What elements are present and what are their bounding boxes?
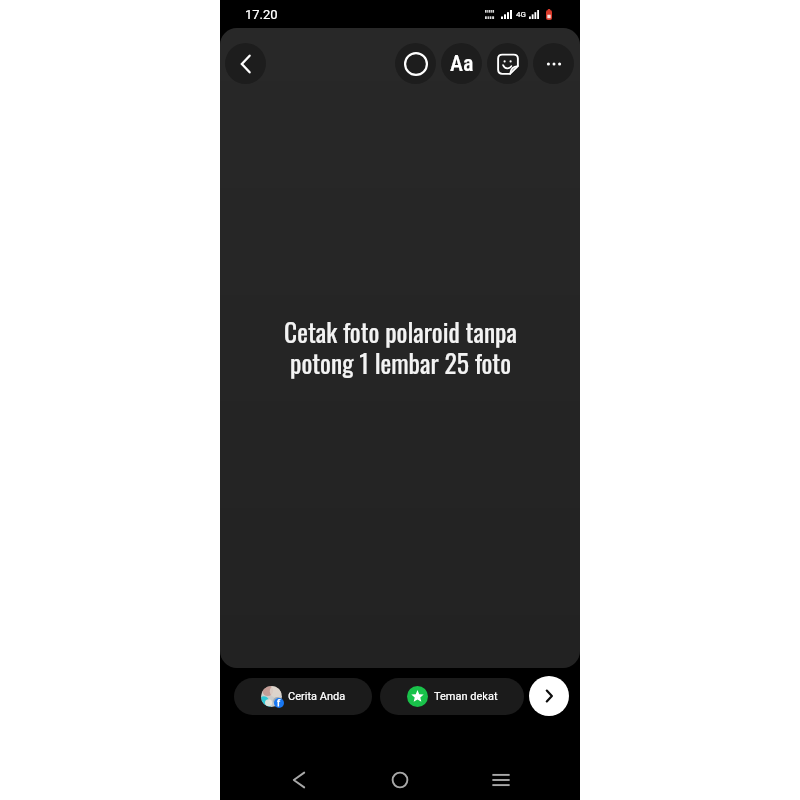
staticText: Cetak foto polaroid tanpa potong 1 lemba… <box>284 313 517 381</box>
button[interactable]: Teman dekat <box>380 678 524 715</box>
staticText: 17.20 <box>245 7 278 22</box>
button[interactable]: f <box>234 678 372 715</box>
button[interactable]: Home <box>378 760 422 800</box>
button[interactable]: More options <box>533 43 574 84</box>
staticText: Cerita Anda <box>288 690 346 703</box>
button[interactable]: Draw <box>395 43 436 84</box>
button[interactable]: Back <box>277 760 321 800</box>
button[interactable]: Text <box>441 43 482 84</box>
button[interactable]: Back <box>225 43 266 84</box>
button[interactable]: Stickers <box>487 43 528 84</box>
staticText: 4G <box>516 10 526 19</box>
staticText: Teman dekat <box>434 690 498 703</box>
staticText: Aa <box>450 51 474 77</box>
button[interactable]: Recents <box>479 760 523 800</box>
button[interactable]: Next <box>529 676 569 716</box>
staticText: f <box>277 698 281 708</box>
